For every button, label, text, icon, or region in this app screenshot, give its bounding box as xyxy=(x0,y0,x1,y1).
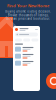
staticText: Buying a home is a big decision. Browse … xyxy=(5,10,51,20)
button[interactable] xyxy=(13,60,40,67)
button[interactable] xyxy=(13,53,40,60)
button[interactable] xyxy=(13,46,40,53)
staticText: Find Your New Home xyxy=(7,3,49,8)
